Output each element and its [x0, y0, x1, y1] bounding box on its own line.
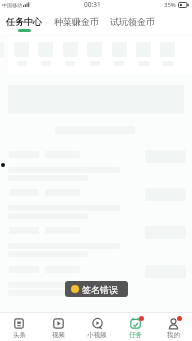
button[interactable]: 试玩领金币: [110, 13, 155, 29]
staticText: 35%: [164, 1, 176, 9]
button[interactable]: 头条: [0, 315, 39, 339]
button[interactable]: 小视频: [78, 315, 116, 339]
staticText: 试玩领金币: [110, 16, 155, 27]
button[interactable]: 种菜赚金币: [54, 13, 99, 29]
staticText: 视频: [52, 331, 65, 339]
staticText: 任务: [129, 331, 142, 339]
staticText: 签名错误: [82, 284, 118, 295]
staticText: 头条: [13, 331, 26, 339]
staticText: 种菜赚金币: [54, 16, 99, 27]
staticText: 小视频: [87, 331, 107, 339]
button[interactable]: 视频: [39, 315, 78, 339]
staticText: 任务中心: [6, 16, 42, 27]
staticText: 我的: [167, 331, 180, 339]
staticText: 中国移动: [2, 2, 22, 8]
button[interactable]: 我的: [154, 315, 192, 339]
button[interactable]: 任务: [116, 315, 154, 339]
staticText: 00:31: [84, 0, 101, 9]
button[interactable]: 任务中心: [6, 13, 42, 32]
